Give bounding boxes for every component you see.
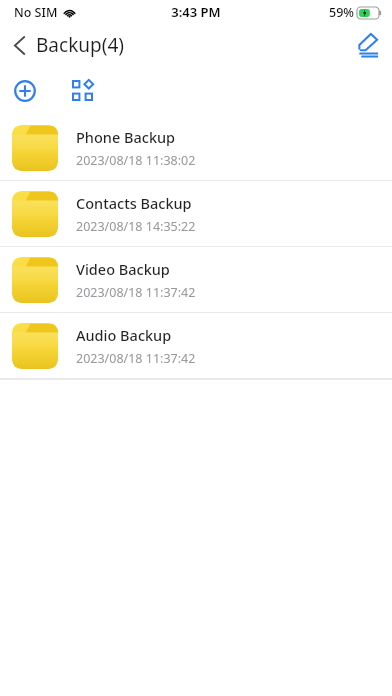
button[interactable]: Add backup: [0, 74, 46, 108]
button[interactable]: Back: [0, 26, 132, 64]
button[interactable]: Audio Backup: [0, 313, 392, 378]
staticText: Video Backup: [76, 259, 170, 279]
staticText: 2023/08/18 11:38:02: [76, 152, 196, 169]
staticText: 2023/08/18 14:35:22: [76, 218, 196, 235]
staticText: 59%: [329, 4, 354, 21]
button[interactable]: Phone Backup: [0, 115, 392, 180]
staticText: 2023/08/18 11:37:42: [76, 284, 196, 301]
staticText: Backup(4): [36, 32, 124, 58]
button[interactable]: Edit: [344, 27, 392, 63]
staticText: 3:43 PM: [171, 3, 221, 21]
button[interactable]: Grid view: [64, 74, 101, 107]
staticText: No SIM: [14, 4, 58, 21]
staticText: Audio Backup: [76, 325, 172, 345]
staticText: Contacts Backup: [76, 193, 192, 213]
button[interactable]: Contacts Backup: [0, 181, 392, 246]
staticText: 2023/08/18 11:37:42: [76, 350, 196, 367]
button[interactable]: Video Backup: [0, 247, 392, 312]
staticText: Phone Backup: [76, 127, 176, 147]
